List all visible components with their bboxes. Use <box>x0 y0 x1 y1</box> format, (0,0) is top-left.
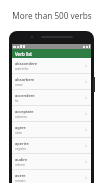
staticText: watch for <box>15 67 29 71</box>
button[interactable]: acceptare <box>12 106 91 122</box>
staticText: advance <box>15 115 28 119</box>
button[interactable]: audire <box>12 154 91 170</box>
button[interactable]: avere <box>12 170 91 183</box>
staticText: aperire <box>15 141 29 146</box>
button[interactable]: Verb list <box>12 49 91 58</box>
staticText: abscondere <box>15 61 38 66</box>
staticText: More than 500 verbs <box>12 10 92 21</box>
button[interactable]: abscondere <box>12 58 91 74</box>
staticText: remain <box>15 179 26 183</box>
button[interactable]: absorbere <box>12 74 91 90</box>
staticText: fix <box>15 99 19 103</box>
staticText: accendere <box>15 93 35 98</box>
staticText: audire <box>15 157 28 162</box>
staticText: Verb list <box>15 51 33 57</box>
staticText: cover <box>15 83 23 87</box>
button[interactable]: aperire <box>12 138 91 154</box>
staticText: agere <box>15 125 26 130</box>
button[interactable]: accendere <box>12 90 91 106</box>
staticText: inform <box>15 163 25 167</box>
staticText: raise <box>15 131 22 135</box>
button[interactable]: agere <box>12 122 91 138</box>
staticText: absorbere <box>15 77 35 82</box>
staticText: acceptare <box>15 109 34 114</box>
staticText: register <box>15 147 27 151</box>
staticText: avere <box>15 173 26 178</box>
